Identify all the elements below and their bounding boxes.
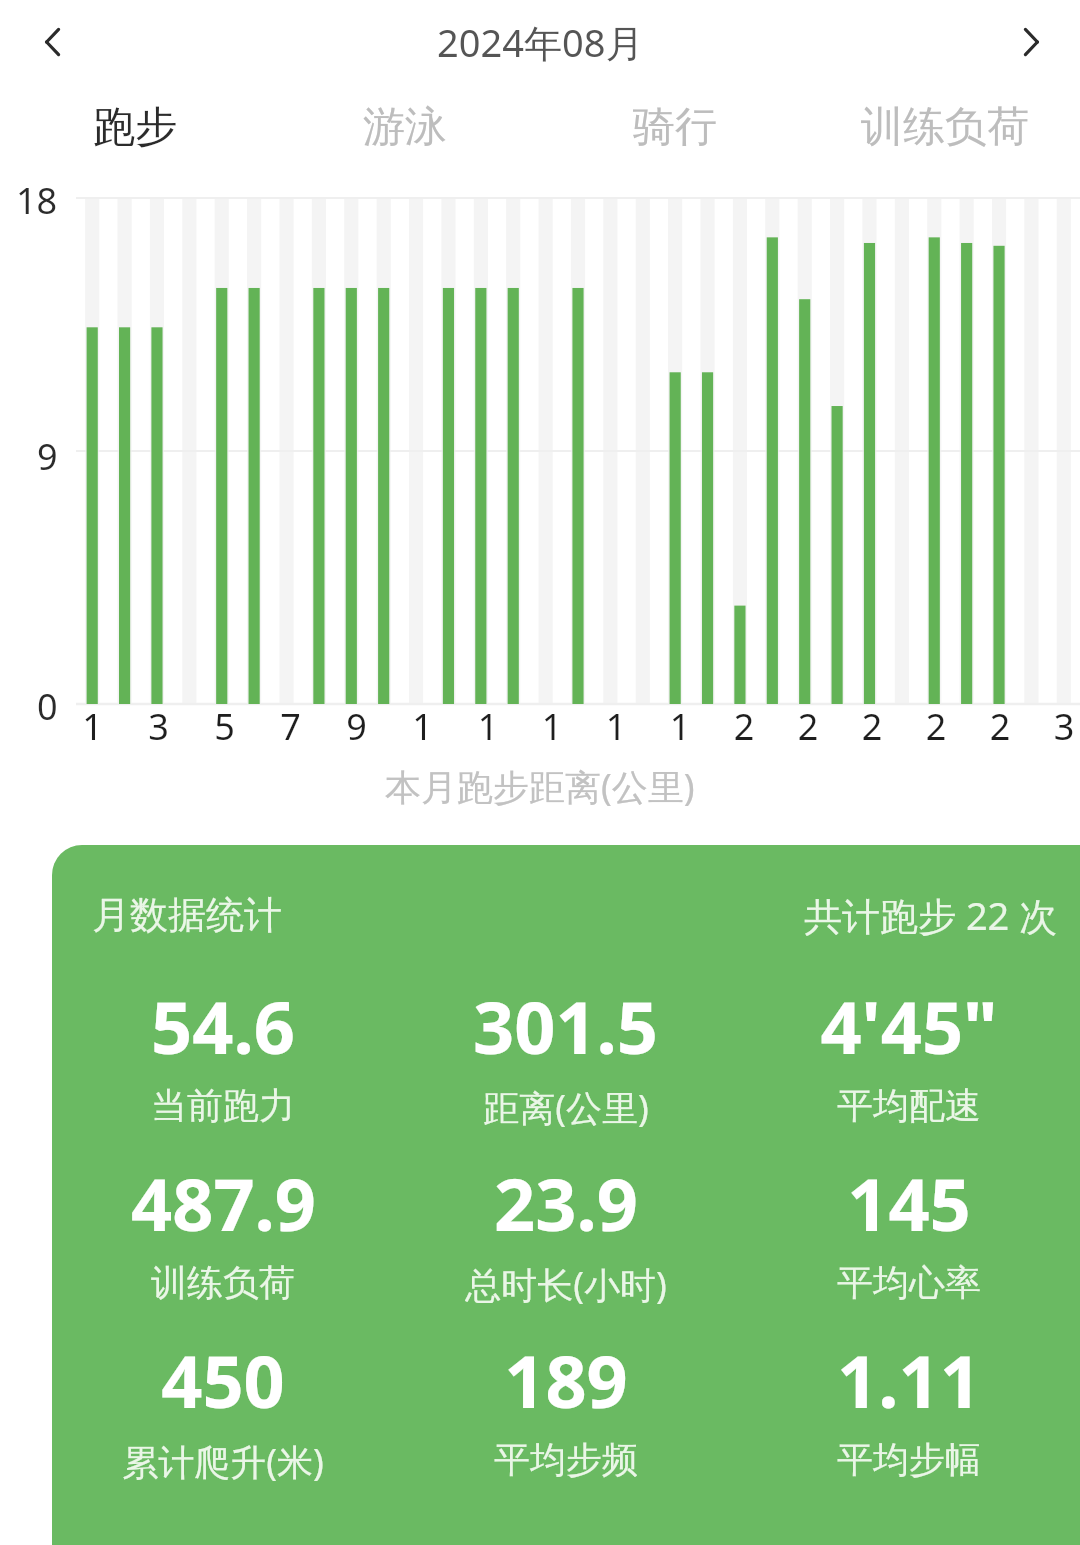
staticText: 11 [406,702,439,750]
staticText: 累计爬升(米) [122,1437,324,1486]
staticText: 54.6 [151,977,295,1075]
staticText: 9 [346,702,367,750]
staticText: 共计跑步 22 次 [804,889,1058,941]
staticText: 7 [280,702,301,750]
staticText: 23 [792,702,824,750]
staticText: 31 [1048,702,1080,750]
button[interactable]: 487.9 [52,1154,394,1305]
staticText: 29 [984,702,1016,750]
staticText: 189 [504,1331,628,1429]
button[interactable]: 301.5 [394,977,737,1132]
button[interactable]: Previous month [26,13,84,71]
staticText: 训练负荷 [151,1260,295,1305]
staticText: 训练负荷 [861,101,1029,154]
staticText: 平均心率 [837,1260,981,1305]
staticText: 1 [82,702,103,750]
button[interactable]: 23.9 [394,1154,737,1309]
staticText: 23.9 [494,1154,638,1252]
staticText: 月数据统计 [92,891,282,939]
staticText: 18 [16,176,58,225]
button[interactable]: 1.11 [737,1331,1080,1482]
button[interactable]: 月数据统计 [52,845,1080,1545]
button[interactable]: 游泳 [270,84,540,170]
staticText: 450 [161,1331,285,1429]
staticText: 301.5 [473,977,658,1075]
staticText: 487.9 [131,1154,316,1252]
staticText: 9 [37,432,58,481]
staticText: 19 [664,702,696,750]
staticText: 1.11 [837,1331,981,1429]
staticText: 平均步幅 [837,1437,981,1482]
button[interactable]: 145 [737,1154,1080,1305]
staticText: 当前跑力 [151,1083,295,1128]
staticText: 4'45" [820,977,998,1075]
staticText: 3 [148,702,169,750]
staticText: 21 [728,702,760,750]
staticText: 0 [37,682,58,731]
staticText: 距离(公里) [483,1083,649,1132]
staticText: 骑行 [633,101,717,154]
staticText: 15 [536,702,568,750]
staticText: 25 [856,702,888,750]
staticText: 27 [920,702,952,750]
staticText: 总时长(小时) [465,1260,667,1309]
staticText: 145 [847,1154,971,1252]
button[interactable]: 54.6 [52,977,394,1128]
staticText: 本月跑步距离(公里) [385,762,695,811]
staticText: 13 [472,702,504,750]
button[interactable]: 跑步 [0,84,270,170]
button[interactable]: 4'45" [737,977,1080,1128]
button[interactable]: 骑行 [540,84,810,170]
staticText: 平均配速 [837,1083,981,1128]
staticText: 17 [600,702,632,750]
button[interactable]: Next month [1000,13,1058,71]
staticText: 游泳 [363,101,447,154]
staticText: 平均步频 [494,1437,638,1482]
button[interactable]: 450 [52,1331,394,1486]
button[interactable]: 训练负荷 [810,84,1080,170]
button[interactable]: 189 [394,1331,737,1482]
staticText: 跑步 [93,101,177,154]
staticText: 5 [214,702,235,750]
staticText: 2024年08月 [437,16,644,68]
